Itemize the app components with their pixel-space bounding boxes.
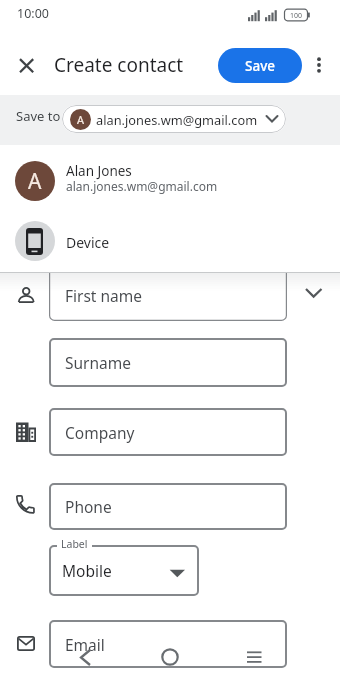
staticText: Device [66,233,110,252]
button[interactable] [241,644,267,670]
staticText: alan.jones.wm@gmail.com [66,178,218,194]
button[interactable] [49,545,199,596]
button[interactable]: Phone [49,483,287,530]
staticText: 100 [290,11,303,21]
staticText: Mobile [62,560,112,581]
button[interactable] [12,53,40,81]
button[interactable] [308,53,334,81]
staticText: Surname [65,352,131,373]
button[interactable] [157,644,183,670]
staticText: A [28,167,42,196]
staticText: Alan Jones [66,162,132,180]
staticText: Label [61,537,88,551]
button[interactable] [300,282,328,304]
staticText: First name [65,285,143,306]
staticText: Phone [65,496,112,517]
button[interactable]: Save [218,48,302,83]
staticText: Email [65,634,105,655]
button[interactable]: Device [0,213,340,269]
button[interactable]: Email [49,620,287,668]
button[interactable]: Surname [49,338,287,387]
staticText: Save [245,57,276,75]
button[interactable]: First name [49,273,287,321]
staticText: alan.jones.wm@gmail.com [96,111,258,128]
button[interactable]: A [62,105,286,133]
staticText: Save to [16,107,61,125]
staticText: Company [65,422,135,443]
button[interactable]: Company [49,408,287,456]
staticText: A [77,112,85,127]
staticText: Create contact [54,52,184,78]
staticText: 10:00 [17,5,49,22]
button[interactable] [72,644,98,670]
button[interactable]: A [0,153,340,209]
